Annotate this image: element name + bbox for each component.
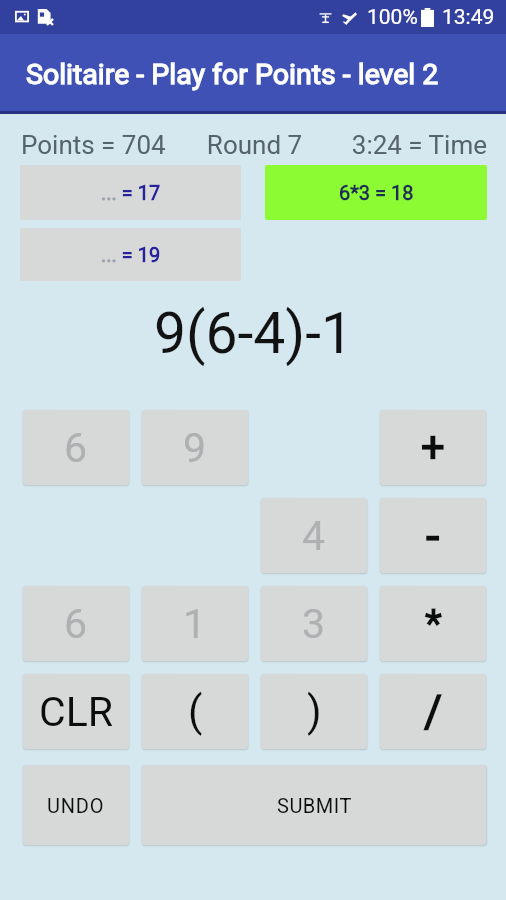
button[interactable]: - xyxy=(380,498,486,573)
button[interactable]: 6 xyxy=(23,410,129,485)
button[interactable]: ) xyxy=(261,674,367,749)
staticText: - xyxy=(426,508,440,564)
button[interactable]: / xyxy=(380,674,486,749)
button[interactable]: ... = 19 xyxy=(20,228,241,281)
staticText: SUBMIT xyxy=(277,794,352,817)
staticText: 1 xyxy=(183,600,207,648)
staticText: 3:24 = Time xyxy=(332,130,487,160)
staticText: CLR xyxy=(39,688,114,736)
staticText: ... = 17 xyxy=(101,181,161,204)
button[interactable]: 6*3 = 18 xyxy=(265,165,487,220)
staticText: 6 xyxy=(64,600,88,648)
staticText: Round 7 xyxy=(177,130,332,160)
staticText: Solitaire - Play for Points - level 2 xyxy=(26,58,439,91)
staticText: ) xyxy=(307,687,322,736)
button[interactable]: UNDO xyxy=(23,765,129,845)
staticText: 9(6-4)-1 xyxy=(154,300,353,367)
button[interactable]: 1 xyxy=(142,586,248,661)
button[interactable]: 9 xyxy=(142,410,248,485)
other: File xyxy=(37,9,53,25)
staticText: + xyxy=(421,423,445,472)
staticText: 4 xyxy=(302,512,326,560)
staticText: / xyxy=(424,686,443,738)
button[interactable]: CLR xyxy=(23,674,129,749)
button[interactable]: 6 xyxy=(23,586,129,661)
staticText: 13:49 xyxy=(442,5,495,30)
button[interactable]: SUBMIT xyxy=(142,765,486,845)
button[interactable]: ... = 17 xyxy=(20,165,241,220)
other: Airplane mode xyxy=(342,10,358,26)
button[interactable]: ( xyxy=(142,674,248,749)
button[interactable]: * xyxy=(380,586,486,661)
staticText: 3 xyxy=(302,600,326,648)
button[interactable]: + xyxy=(380,410,486,485)
staticText: Points = 704 xyxy=(21,130,177,160)
button[interactable]: 3 xyxy=(261,586,367,661)
staticText: * xyxy=(425,601,442,647)
other: Network xyxy=(318,10,333,25)
staticText: 6 xyxy=(64,424,88,472)
staticText: 9 xyxy=(183,424,207,472)
other: Screenshot xyxy=(15,10,29,24)
staticText: 6*3 = 18 xyxy=(339,181,414,204)
staticText: ( xyxy=(188,687,203,736)
staticText: 100% xyxy=(367,5,418,30)
staticText: ... = 19 xyxy=(101,243,161,266)
staticText: UNDO xyxy=(47,794,105,817)
button[interactable]: 4 xyxy=(261,498,367,573)
